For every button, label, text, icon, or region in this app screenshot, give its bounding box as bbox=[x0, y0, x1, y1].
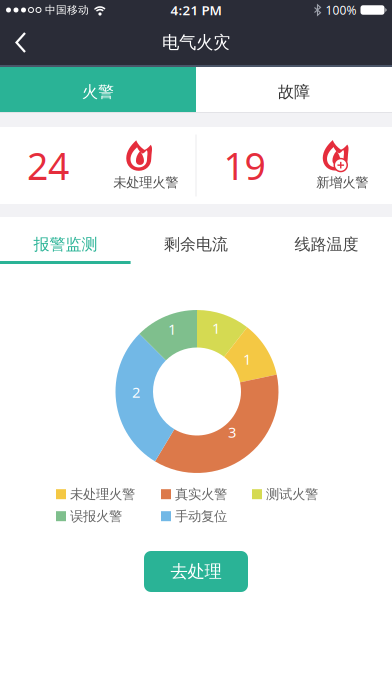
staticText: 报警监测 bbox=[33, 235, 97, 254]
staticText: 电气火灾 bbox=[162, 32, 230, 53]
staticText: 中国移动 bbox=[45, 3, 89, 16]
staticText: 100% bbox=[325, 2, 356, 18]
button[interactable]: Back bbox=[0, 20, 47, 65]
staticText: 未处理火警 bbox=[113, 174, 178, 191]
staticText: 剩余电流 bbox=[164, 235, 228, 254]
button[interactable]: 故障 bbox=[196, 67, 392, 112]
staticText: 3 bbox=[228, 422, 236, 442]
staticText: 误报火警 bbox=[70, 508, 122, 524]
button[interactable]: 报警监测 bbox=[0, 217, 131, 261]
button[interactable]: 火警 bbox=[0, 67, 196, 112]
staticText: 19 bbox=[223, 141, 265, 190]
staticText: 去处理 bbox=[170, 561, 221, 582]
staticText: 线路温度 bbox=[295, 235, 359, 254]
staticText: 1 bbox=[212, 318, 220, 338]
staticText: 测试火警 bbox=[266, 486, 318, 502]
staticText: 4:21 PM bbox=[170, 1, 221, 19]
staticText: 2 bbox=[132, 382, 140, 402]
staticText: 新增火警 bbox=[316, 174, 368, 191]
staticText: 真实火警 bbox=[175, 486, 227, 502]
staticText: 故障 bbox=[278, 82, 310, 102]
staticText: 火警 bbox=[82, 82, 114, 102]
staticText: 1 bbox=[243, 349, 251, 369]
staticText: 1 bbox=[168, 319, 176, 339]
button[interactable]: 剩余电流 bbox=[131, 217, 261, 261]
button[interactable]: 去处理 bbox=[144, 551, 248, 592]
button[interactable]: 线路温度 bbox=[261, 217, 392, 261]
staticText: 24 bbox=[27, 141, 69, 190]
staticText: 未处理火警 bbox=[70, 486, 135, 502]
staticText: 手动复位 bbox=[175, 508, 227, 524]
